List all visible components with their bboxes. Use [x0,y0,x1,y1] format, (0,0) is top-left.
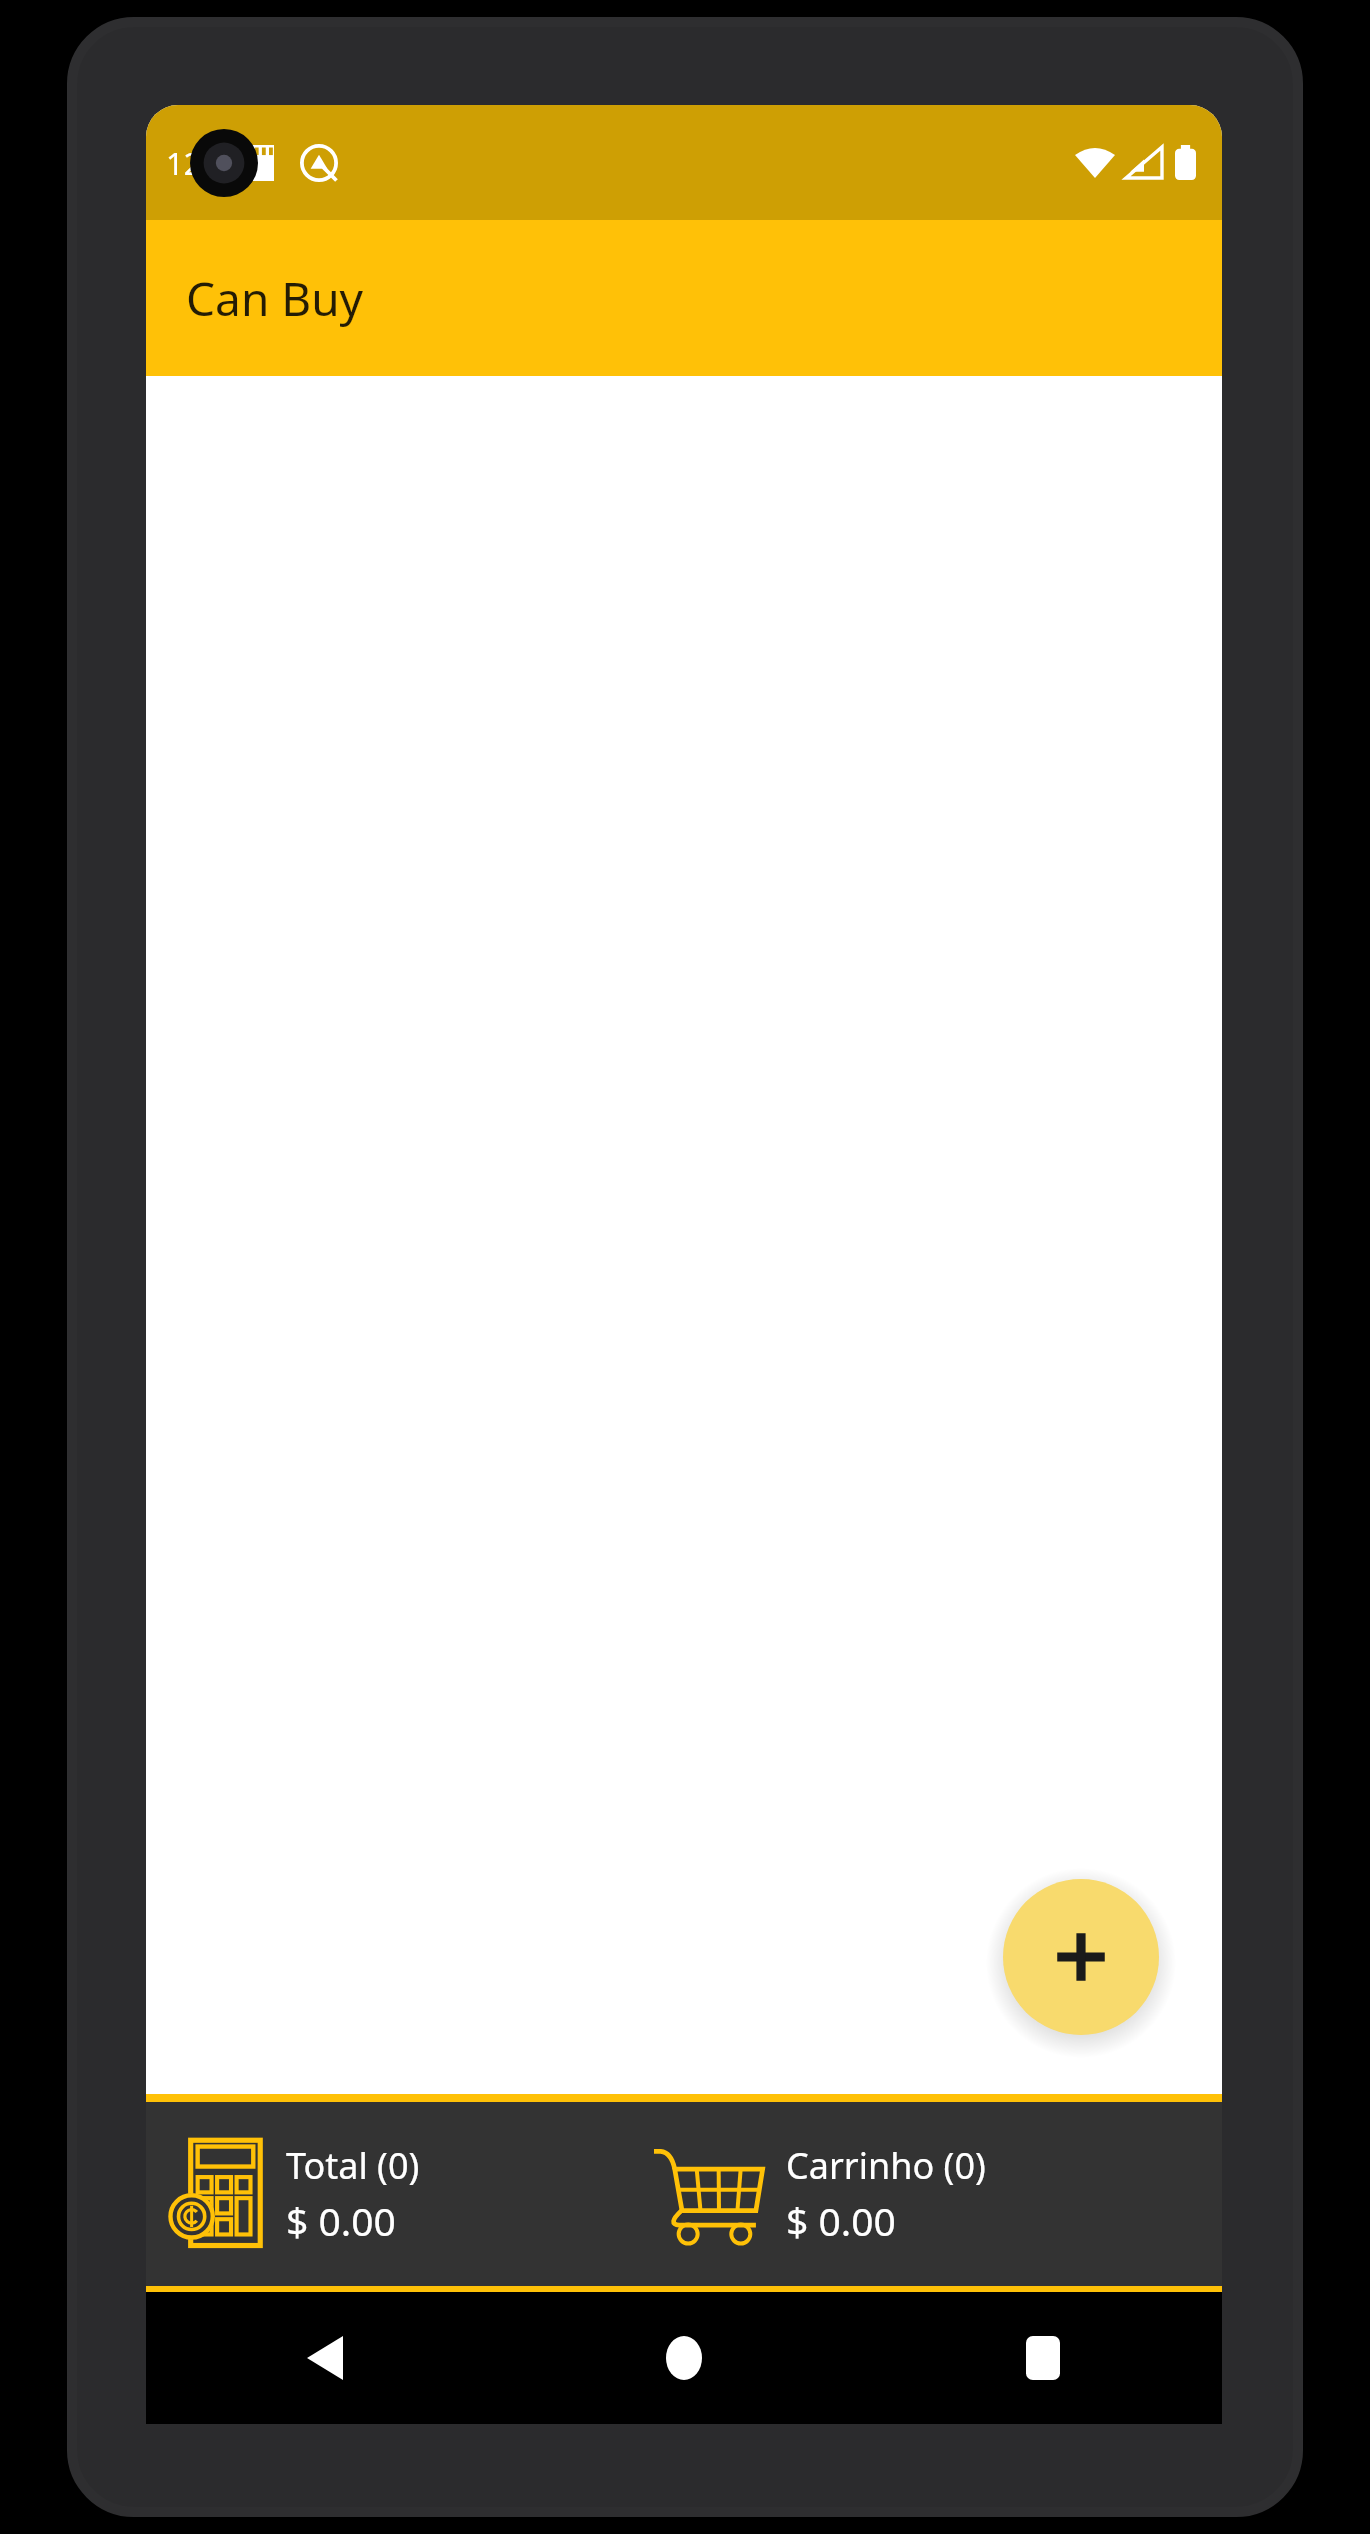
staticText: Total (0) [286,2141,420,2190]
staticText: Carrinho (0) [786,2141,986,2190]
staticText: 12 [166,142,202,184]
button[interactable]: Recent apps [863,2292,1222,2424]
button[interactable]: Home [504,2292,863,2424]
button[interactable]: Total (0) [146,2102,654,2286]
staticText: $ 0.00 [286,2194,396,2247]
button[interactable]: Back [146,2292,504,2424]
staticText: $ 0.00 [786,2194,896,2247]
button[interactable]: Carrinho (0) [654,2102,1222,2286]
staticText: Can Buy [186,267,364,330]
button[interactable]: Adicionar produto [1003,1879,1159,2035]
